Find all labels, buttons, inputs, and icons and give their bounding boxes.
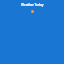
staticText: Weather Today bbox=[21, 3, 44, 7]
